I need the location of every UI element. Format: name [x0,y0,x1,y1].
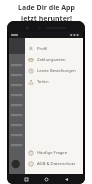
button[interactable]: Letzte Bestellungen [25,65,83,76]
staticText: Letzte Bestellungen [37,68,76,74]
staticText: jetzt herunter! [21,14,72,24]
staticText: AGB & Datenschutz [37,161,76,167]
staticText: Häufige Fragen [37,150,68,156]
staticText: Profil [37,46,48,52]
staticText: Teilen [37,79,49,85]
button[interactable]: Recents [21,174,31,184]
staticText: Zahlungsarten [37,57,66,63]
button[interactable]: Back [61,174,71,184]
button[interactable]: Häufige Fragen [25,147,83,158]
button[interactable]: Teilen [25,76,83,87]
button[interactable]: Zahlungsarten [25,54,83,65]
button[interactable]: Home [41,174,51,184]
button[interactable]: AGB & Datenschutz [25,158,83,169]
button[interactable]: Profil [25,43,83,54]
staticText: Lade Dir die App [18,3,75,13]
